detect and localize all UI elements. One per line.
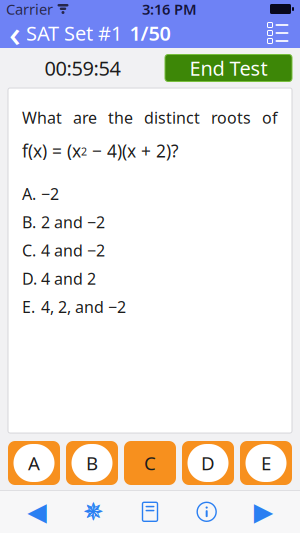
- staticText: ‹: [9, 9, 21, 57]
- staticText: A.: [22, 183, 36, 204]
- staticText: C: [144, 451, 156, 475]
- staticText: What: [22, 107, 62, 128]
- staticText: SAT Set #1: [26, 20, 122, 46]
- staticText: E.: [22, 296, 35, 317]
- staticText: 1/50: [129, 20, 170, 46]
- button[interactable]: ‹: [0, 7, 122, 59]
- button[interactable]: Question list: [267, 19, 300, 46]
- button[interactable]: Hint: [73, 496, 113, 528]
- button[interactable]: C: [124, 441, 176, 485]
- staticText: B: [86, 451, 98, 475]
- staticText: C.: [22, 240, 36, 261]
- staticText: D.: [22, 268, 37, 289]
- staticText: 4, 2, and −2: [41, 296, 126, 317]
- staticText: B.: [22, 211, 36, 233]
- staticText: 4 and −2: [41, 240, 105, 261]
- staticText: 2: [81, 144, 87, 158]
- button[interactable]: A: [8, 441, 60, 485]
- staticText: ◀: [27, 497, 46, 526]
- staticText: D: [201, 451, 215, 475]
- staticText: of: [262, 107, 278, 128]
- staticText: 4 and 2: [41, 268, 96, 289]
- button[interactable]: D: [182, 441, 234, 485]
- button[interactable]: E: [240, 441, 292, 485]
- staticText: ✵: [83, 497, 104, 526]
- button[interactable]: End Test: [165, 54, 292, 81]
- staticText: ✳: [84, 499, 103, 525]
- staticText: End Test: [189, 55, 267, 81]
- staticText: 00:59:54: [44, 55, 120, 81]
- button[interactable]: Previous question: [17, 496, 57, 528]
- staticText: distinct: [144, 107, 200, 128]
- button[interactable]: B: [66, 441, 118, 485]
- staticText: A: [28, 451, 40, 475]
- staticText: E: [261, 451, 271, 475]
- staticText: − 4)(x + 2)?: [87, 139, 179, 162]
- staticText: Carrier: [6, 0, 53, 19]
- staticText: 2 and −2: [41, 211, 105, 233]
- staticText: 3:16 PM: [142, 0, 197, 19]
- button[interactable]: Explanation: [187, 496, 227, 528]
- staticText: −2: [41, 183, 59, 204]
- button[interactable]: Next question: [243, 496, 283, 528]
- button[interactable]: Notes: [130, 496, 170, 528]
- staticText: f(x) = (x: [22, 139, 81, 162]
- staticText: roots: [211, 107, 251, 128]
- staticText: are: [73, 107, 97, 128]
- staticText: ▶: [254, 497, 273, 526]
- staticText: the: [108, 107, 133, 128]
